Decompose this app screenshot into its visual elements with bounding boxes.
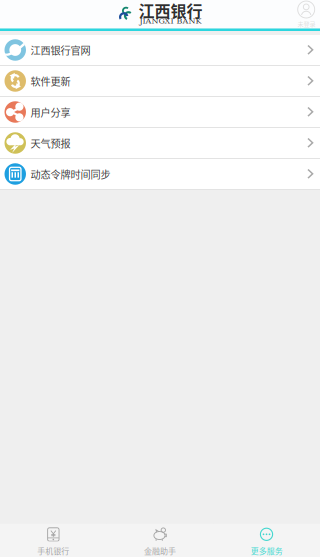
button[interactable]: 动态令牌时间同步 [0, 159, 320, 190]
staticText: 更多服务 [251, 545, 283, 557]
button[interactable]: 手机银行 [0, 523, 107, 557]
staticText: 手机银行 [37, 545, 69, 557]
staticText: 用户分享 [30, 105, 70, 119]
staticText: 金融助手 [144, 545, 176, 557]
button[interactable]: 用户分享 [0, 97, 320, 128]
button[interactable]: 软件更新 [0, 66, 320, 97]
staticText: 江西银行官网 [30, 43, 90, 57]
button[interactable]: 天气预报 [0, 128, 320, 159]
button[interactable]: 江西银行官网 [0, 35, 320, 66]
staticText: 动态令牌时间同步 [30, 167, 110, 181]
staticText: 江西银行 [138, 0, 202, 22]
staticText: 软件更新 [30, 74, 70, 88]
button[interactable]: 未登录 [297, 0, 316, 28]
button[interactable]: 更多服务 [213, 523, 320, 557]
staticText: 未登录 [297, 19, 315, 28]
staticText: JIANGXI BANK [139, 16, 201, 25]
staticText: 天气预报 [30, 136, 70, 150]
button[interactable]: 金融助手 [107, 523, 213, 557]
